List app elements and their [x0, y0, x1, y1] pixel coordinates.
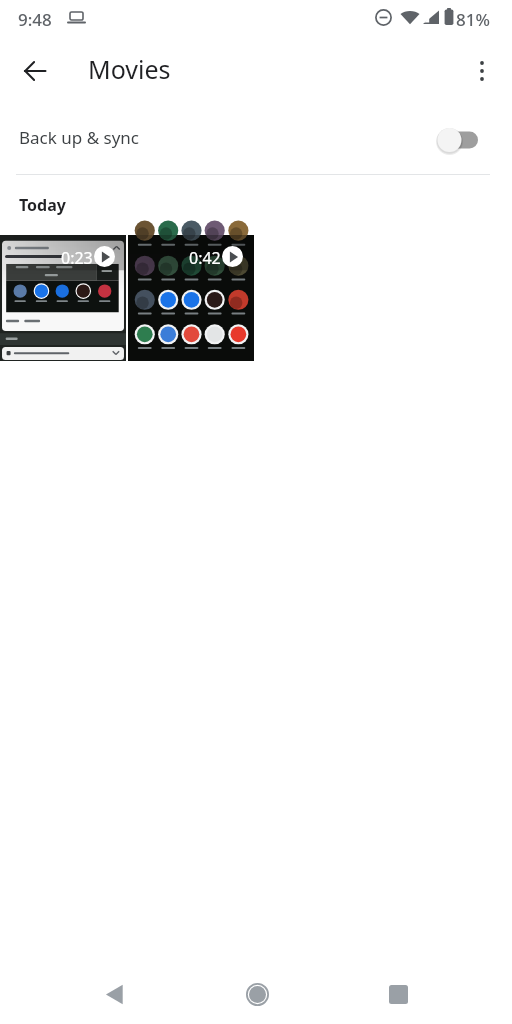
staticText: 9:48 — [18, 8, 52, 31]
button[interactable]: Back up & sync off — [432, 124, 488, 156]
button[interactable]: Recent apps — [374, 970, 422, 1018]
staticText: Back up & sync — [19, 126, 139, 149]
button[interactable]: Movie 0:42 — [128, 235, 254, 361]
staticText: 81% — [456, 8, 490, 31]
staticText: Today — [19, 194, 66, 216]
button[interactable]: Navigate up — [11, 47, 58, 94]
button[interactable]: Back up & sync — [0, 110, 512, 170]
button[interactable]: Movie 0:23 — [0, 235, 126, 361]
button[interactable]: Back — [90, 970, 138, 1018]
staticText: 0:42 — [189, 247, 221, 269]
staticText: Movies — [88, 52, 171, 86]
staticText: 0:23 — [61, 247, 93, 269]
button[interactable]: More options — [458, 47, 505, 94]
button[interactable]: Home — [233, 970, 281, 1018]
